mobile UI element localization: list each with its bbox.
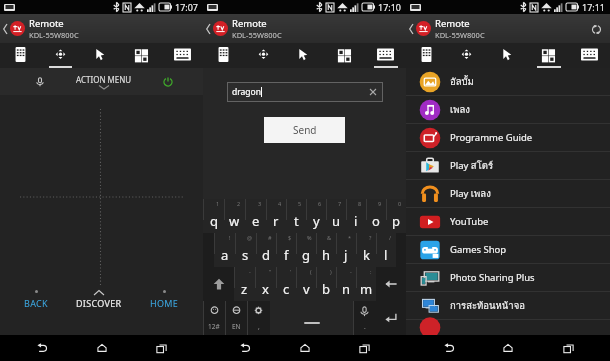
button[interactable]: $	[276, 233, 296, 267]
staticText: d	[262, 246, 270, 264]
button[interactable]: Keyboard	[569, 43, 610, 68]
button[interactable]: Cursor	[80, 43, 121, 68]
button[interactable]: อัลบั้ม	[406, 68, 610, 95]
button[interactable]: Keyboard	[162, 43, 203, 68]
staticText: &	[327, 234, 332, 241]
button[interactable]: EN	[225, 301, 247, 335]
button[interactable]: ,	[247, 301, 270, 335]
button[interactable]: เพลง	[406, 96, 610, 123]
button[interactable]: Play สโตร์	[406, 152, 610, 179]
button[interactable]: BACK	[20, 290, 52, 309]
button[interactable]: Recents	[551, 335, 585, 361]
button[interactable]: BACK	[0, 95, 203, 335]
button[interactable]: YouTube	[406, 208, 610, 235]
button[interactable]: Home	[85, 335, 119, 361]
staticText: Play สโตร์	[450, 158, 494, 173]
button[interactable]: Cursor	[283, 43, 324, 68]
button[interactable]: &	[316, 233, 336, 267]
button[interactable]: D-pad	[446, 43, 487, 68]
button[interactable]: Clear	[366, 85, 380, 99]
button[interactable]: Refresh	[584, 17, 608, 41]
button[interactable]: Recents	[144, 335, 178, 361]
button[interactable]: -	[234, 267, 255, 301]
button[interactable]: 12#	[203, 301, 225, 335]
button[interactable]: '	[276, 267, 296, 301]
staticText: "	[269, 268, 272, 275]
button[interactable]: 7	[326, 199, 346, 233]
button[interactable]: Photo Sharing Plus	[406, 264, 610, 291]
button[interactable]: Home	[288, 335, 322, 361]
button[interactable]: 9	[366, 199, 386, 233]
staticText: -	[249, 268, 251, 275]
button[interactable]: Play เพลง	[406, 180, 610, 207]
button[interactable]: "	[255, 267, 276, 301]
button[interactable]: Keyboard	[365, 43, 406, 68]
button[interactable]: Voice search	[31, 73, 49, 91]
button[interactable]: %	[296, 233, 316, 267]
button[interactable]: ACTION MENU	[76, 74, 132, 89]
button[interactable]: 2	[224, 199, 245, 233]
button[interactable]: Send	[264, 117, 345, 143]
staticText: 8	[358, 200, 362, 207]
button[interactable]: Apps grid	[324, 43, 365, 68]
button[interactable]: D-pad	[40, 43, 80, 68]
button[interactable]: Back	[406, 14, 416, 43]
button[interactable]: Apps grid	[528, 43, 569, 68]
button[interactable]: D-pad	[243, 43, 283, 68]
button[interactable]: Space	[270, 301, 353, 335]
staticText: ,	[258, 322, 260, 331]
button[interactable]: Apps grid	[121, 43, 162, 68]
button[interactable]: #	[256, 233, 276, 267]
staticText: f	[284, 246, 289, 264]
button[interactable]: Home	[491, 335, 525, 361]
button[interactable]: Power	[159, 73, 177, 91]
staticText: 17:07	[175, 1, 199, 13]
button[interactable]: Recents	[347, 335, 381, 361]
button[interactable]: Back	[203, 14, 213, 43]
button[interactable]: DISCOVER	[72, 290, 126, 309]
button[interactable]: Games Shop	[406, 236, 610, 263]
button[interactable]: (	[296, 267, 316, 301]
button[interactable]: .	[353, 301, 376, 335]
button[interactable]: Back	[432, 335, 466, 361]
button[interactable]	[406, 320, 610, 335]
staticText: 5	[298, 200, 302, 207]
button[interactable]: -	[336, 267, 356, 301]
button[interactable]: 8	[346, 199, 366, 233]
staticText: q	[210, 212, 218, 230]
button[interactable]: 6	[306, 199, 326, 233]
button[interactable]: HOME	[146, 290, 183, 309]
staticText: a	[221, 246, 229, 264]
button[interactable]: )	[316, 267, 336, 301]
button[interactable]: Remote keypad	[0, 43, 40, 68]
button[interactable]: Remote keypad	[203, 43, 243, 68]
button[interactable]: Back	[0, 14, 10, 43]
button[interactable]: Cursor	[487, 43, 528, 68]
button[interactable]: 3	[245, 199, 266, 233]
button[interactable]: Enter	[376, 301, 406, 335]
button[interactable]: /	[376, 233, 396, 267]
button[interactable]: 4	[266, 199, 286, 233]
button[interactable]: 1	[203, 199, 224, 233]
staticText: .	[364, 322, 366, 331]
button[interactable]: Backspace	[376, 267, 406, 301]
staticText: o	[372, 212, 380, 230]
button[interactable]: การสะท้อนหน้าจอ	[406, 292, 610, 319]
staticText: m	[360, 280, 373, 298]
button[interactable]: Remote keypad	[406, 43, 446, 68]
button[interactable]: Back	[228, 335, 262, 361]
button[interactable]: @	[235, 233, 256, 267]
button[interactable]: *	[336, 233, 356, 267]
button[interactable]: 5	[286, 199, 306, 233]
button[interactable]: dragon	[227, 82, 383, 102]
button[interactable]: Shift	[203, 267, 234, 301]
button[interactable]: :	[356, 267, 376, 301]
button[interactable]: 0	[386, 199, 406, 233]
button[interactable]: Back	[25, 335, 59, 361]
button[interactable]: ?	[356, 233, 376, 267]
staticText: Photo Sharing Plus	[450, 271, 535, 284]
staticText: %	[307, 234, 312, 241]
staticText: 1	[216, 200, 220, 207]
button[interactable]: Programme Guide	[406, 124, 610, 151]
button[interactable]: !	[214, 233, 235, 267]
